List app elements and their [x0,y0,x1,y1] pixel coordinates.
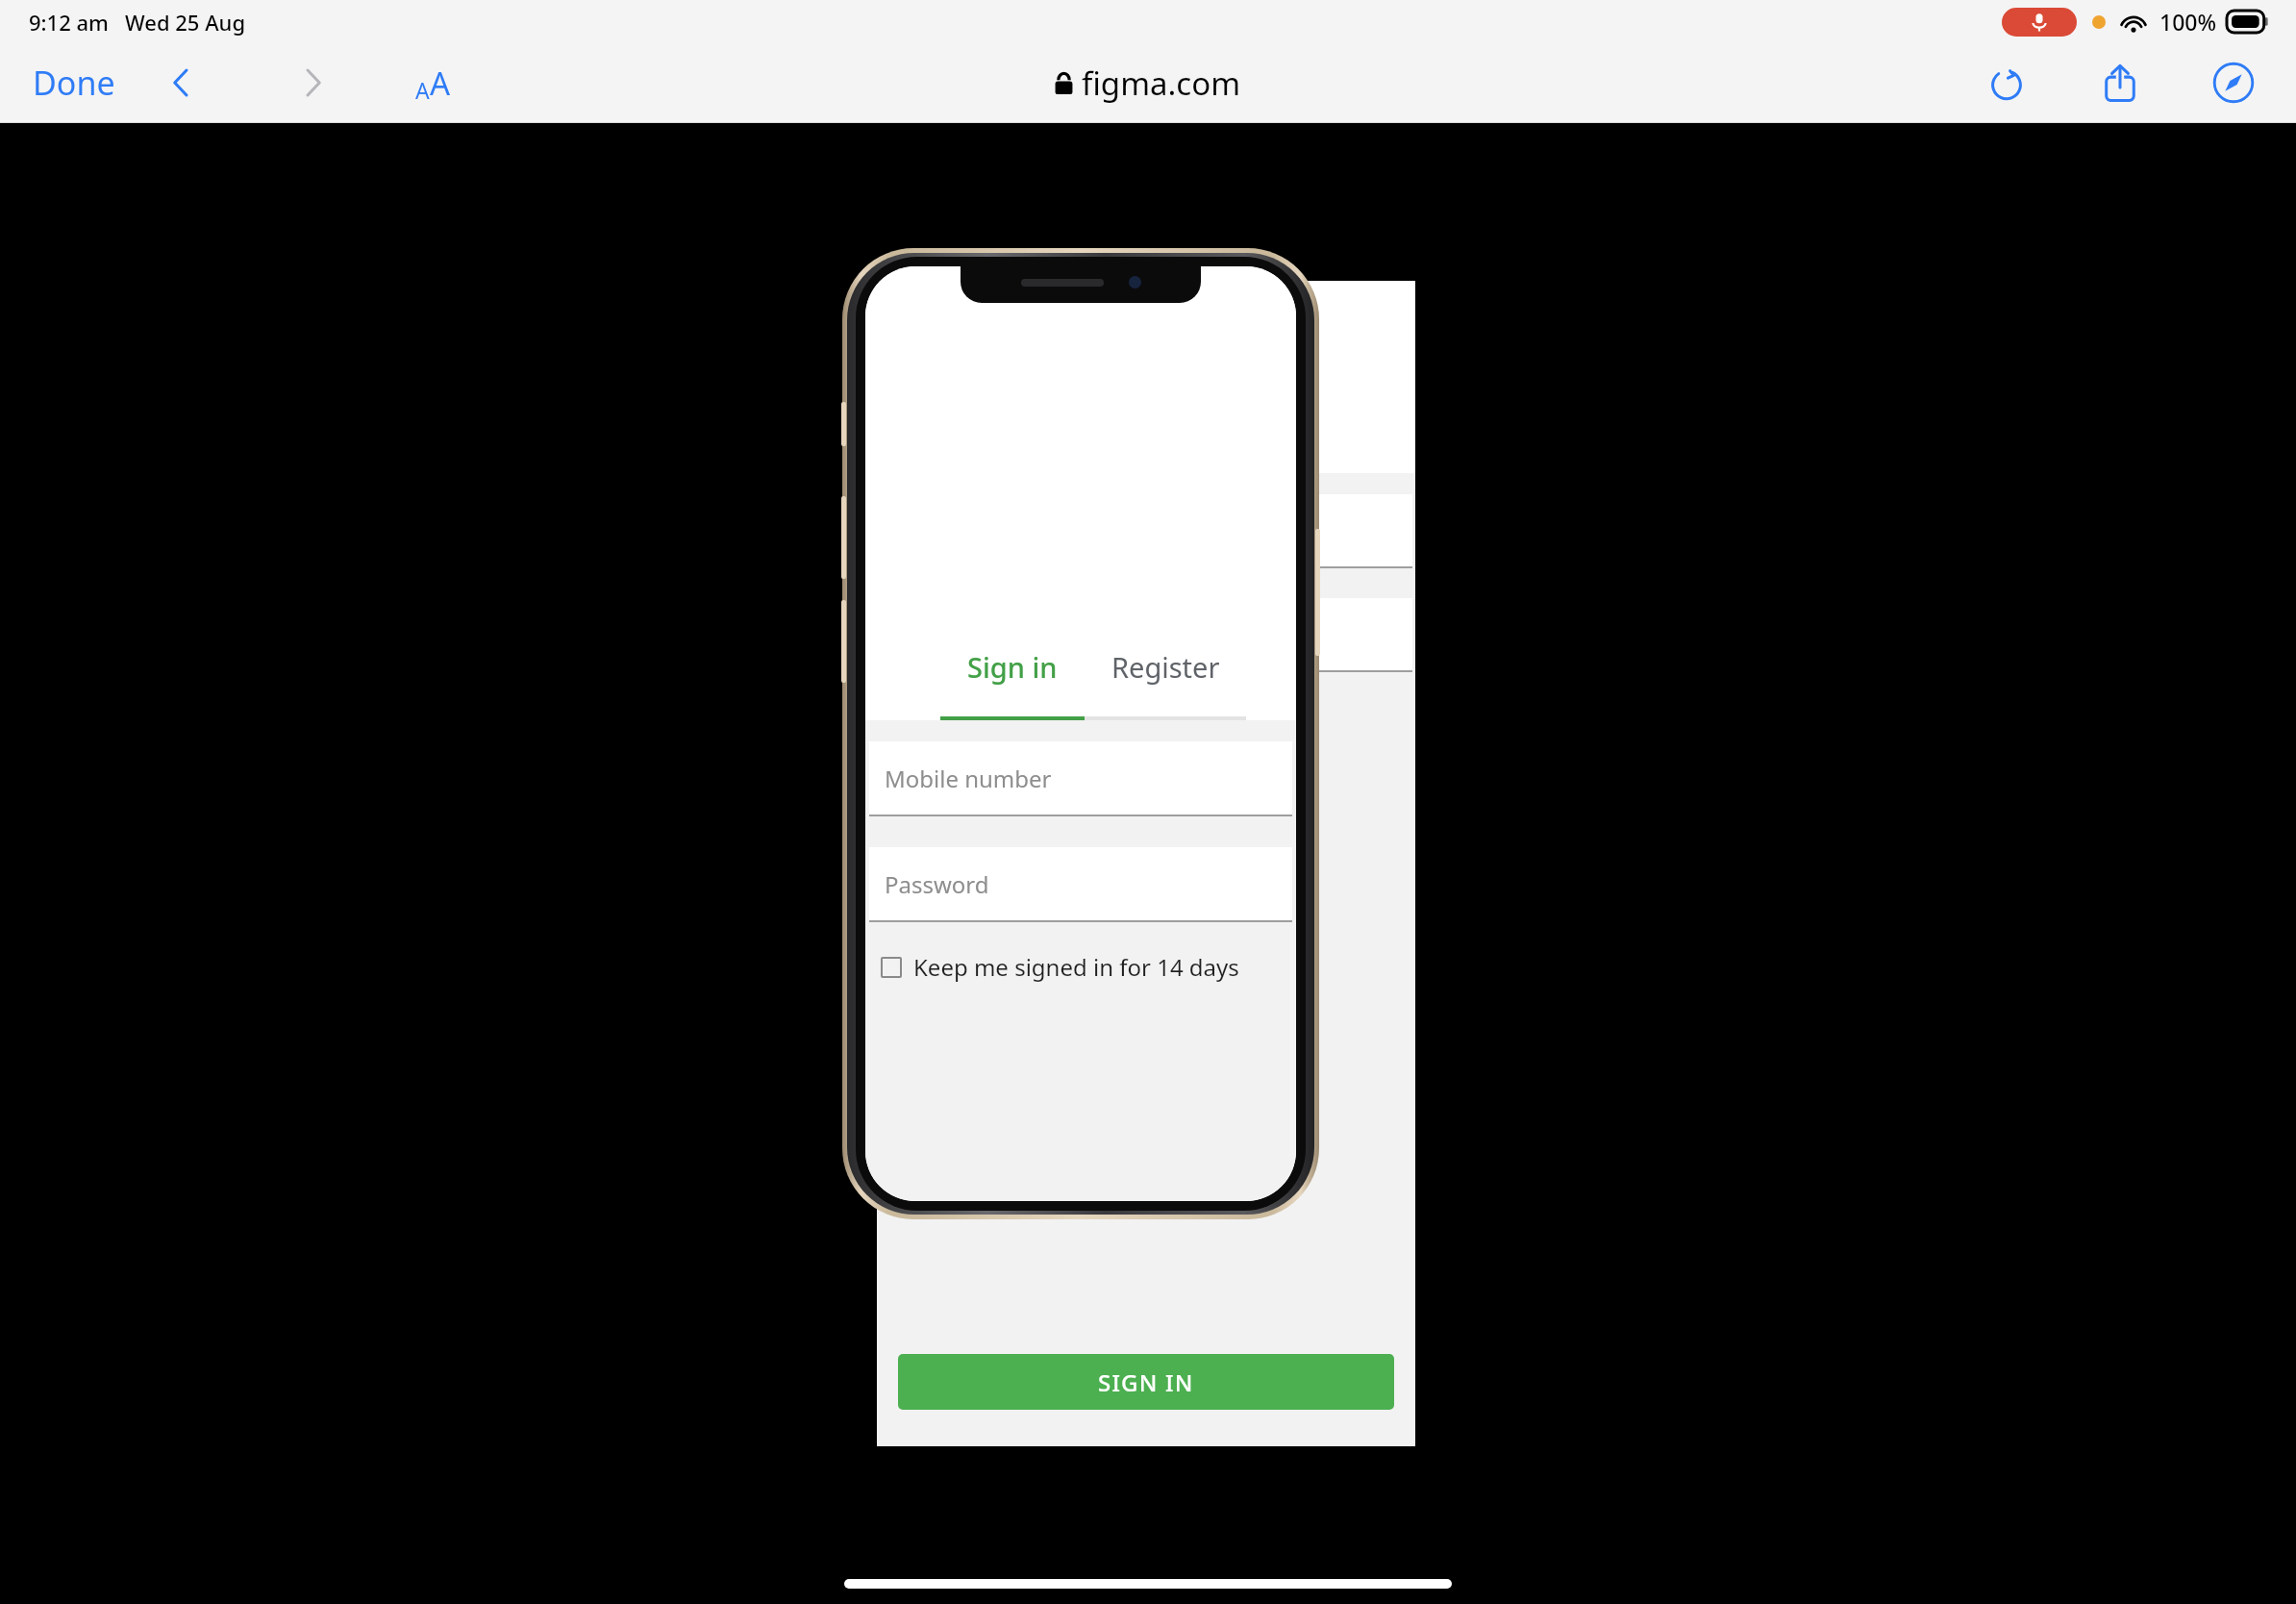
staticText: Password [885,868,989,900]
staticText: Register [1111,648,1220,686]
button[interactable]: Forward [285,51,348,114]
button[interactable]: Password [869,847,1292,920]
staticText: 100% [2159,7,2217,37]
button[interactable]: Sign in [940,648,1085,720]
staticText: SIGN IN [1098,1366,1194,1398]
button[interactable]: Open in Safari [2200,49,2267,116]
button[interactable]: Mobile number [880,494,1412,567]
button[interactable]: Keep me signed in for 14 days [892,692,1255,743]
staticText: Sign in [967,648,1058,686]
button[interactable]: figma.com [1039,56,1257,111]
staticText: figma.com [1082,62,1241,105]
button[interactable]: Password [880,598,1412,671]
button[interactable]: Done [21,53,127,113]
button[interactable]: Register [1085,648,1246,720]
staticText: Mobile number [885,763,1052,794]
staticText: A [415,75,430,105]
staticText: Done [33,61,115,105]
button[interactable]: Mobile number [869,741,1292,815]
button[interactable]: Share [2086,49,2154,116]
button[interactable]: Keep me signed in for 14 days [879,943,1241,990]
button[interactable]: SIGN IN [898,1354,1394,1410]
staticText: Keep me signed in for 14 days [927,702,1253,734]
button[interactable]: Reload page [1973,49,2040,116]
staticText: Keep me signed in for 14 days [913,951,1239,983]
button[interactable]: Back [146,51,210,114]
staticText: 9:12 am Wed 25 Aug [29,8,246,37]
staticText: A [430,62,451,105]
button[interactable]: Text size options [408,56,459,111]
